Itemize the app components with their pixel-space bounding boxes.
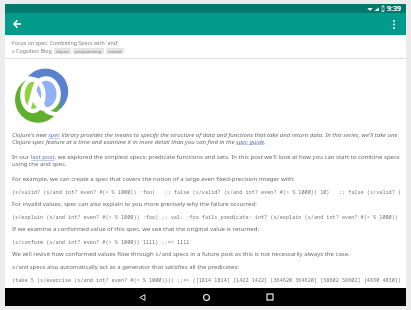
staticText: In our last post, we explored the simple… (12, 153, 400, 168)
button[interactable]: clojure (54, 48, 71, 54)
staticText: (s/explain (s/and int? even? #(> % 1000)… (12, 213, 400, 220)
staticText: s/and specs also automatically act as a … (12, 263, 239, 271)
staticText: programming (75, 49, 102, 54)
staticText: unread (108, 49, 122, 54)
staticText: (s/valid? (s/and int? even? #(> % 1000))… (12, 188, 400, 195)
staticText: For invalid values, spec can also explai… (12, 200, 257, 208)
button[interactable]: Recent apps (252, 288, 288, 306)
staticText: (s/conform (s/and int? even? #(> % 1000)… (12, 238, 190, 245)
button[interactable]: More options (386, 16, 402, 32)
staticText: Focus on spec: Combining Specs with `and… (12, 39, 119, 46)
button[interactable]: Home (188, 288, 224, 306)
button[interactable]: Back (124, 288, 160, 306)
staticText: (take 5 (s/exercise (s/and int? even? #(… (12, 276, 400, 283)
staticText: If we examine a conformed value of this … (12, 225, 260, 233)
button[interactable]: Back (9, 16, 25, 32)
staticText: For example, we can create a spec that c… (12, 175, 295, 183)
button[interactable]: Focus on spec: Combining Specs with `and… (5, 35, 406, 58)
button[interactable]: programming (73, 48, 104, 54)
staticText: We will revisit how conformed values flo… (12, 250, 350, 258)
staticText: 9:39 (387, 4, 401, 13)
staticText: Clojure's new spec library provides the … (12, 131, 400, 146)
staticText: clojure (56, 49, 69, 54)
button[interactable]: unread (106, 48, 124, 54)
staticText: » Cogsitect Blog (12, 47, 52, 54)
